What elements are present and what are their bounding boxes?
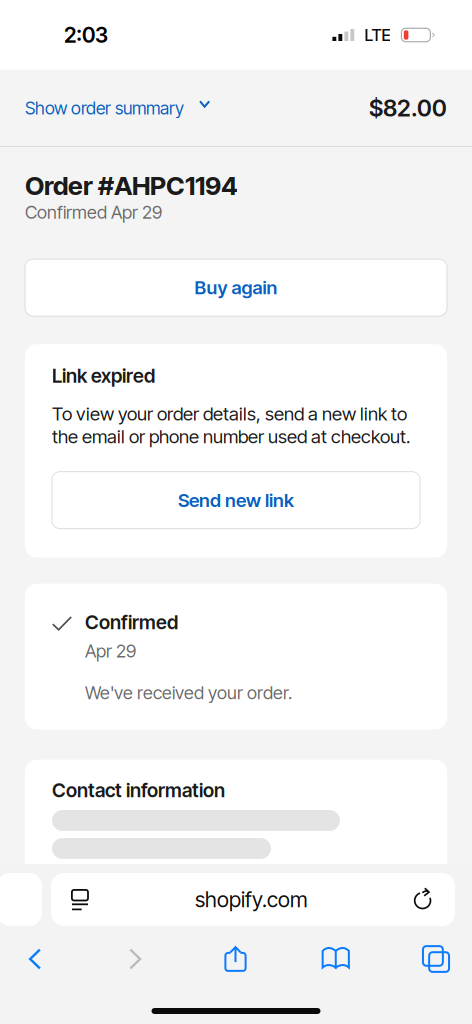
staticText: Buy again xyxy=(194,276,277,299)
button[interactable]: shopify.com xyxy=(51,873,455,926)
button[interactable]: Forward xyxy=(100,936,170,982)
button[interactable]: Buy again xyxy=(25,259,447,316)
button[interactable]: Send new link xyxy=(52,472,420,529)
staticText: 2:03 xyxy=(64,22,108,48)
staticText: Show order summary xyxy=(25,97,184,119)
staticText: Link expired xyxy=(52,364,155,387)
staticText: Send new link xyxy=(178,489,294,511)
button[interactable]: Show order summary xyxy=(25,86,210,130)
staticText: Order #AHPC1194 xyxy=(25,170,238,201)
button[interactable]: Share xyxy=(200,936,270,982)
staticText: $82.00 xyxy=(369,94,447,122)
staticText: Contact information xyxy=(52,779,225,802)
button[interactable]: Bookmarks xyxy=(301,936,371,982)
button[interactable]: Back xyxy=(0,936,70,982)
staticText: Confirmed Apr 29 xyxy=(25,201,162,223)
staticText: Apr 29 xyxy=(85,640,136,662)
staticText: We've received your order. xyxy=(85,682,292,704)
staticText: Confirmed xyxy=(85,611,178,634)
staticText: To view your order details, send a new l… xyxy=(52,402,410,448)
staticText: shopify.com xyxy=(195,887,308,912)
button[interactable]: Tabs xyxy=(401,936,471,982)
staticText: LTE xyxy=(364,25,390,45)
